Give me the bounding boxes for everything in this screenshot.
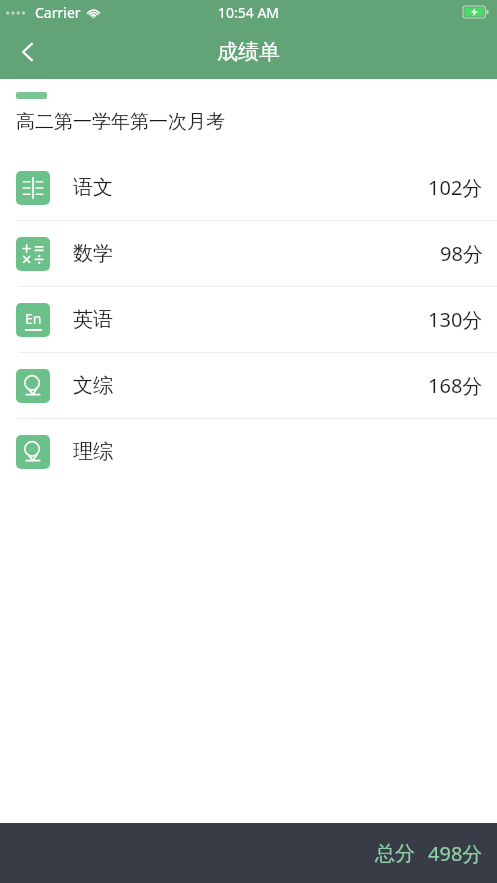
button[interactable]: 理综 xyxy=(0,419,497,484)
staticText: 168分 xyxy=(428,372,483,399)
staticText: 498分 xyxy=(428,840,483,867)
button[interactable]: 文综 xyxy=(0,353,497,419)
staticText: 130分 xyxy=(428,306,483,333)
staticText: 英语 xyxy=(73,307,113,332)
button[interactable]: 语文 xyxy=(0,155,497,221)
button[interactable]: En xyxy=(0,287,497,353)
staticText: 成绩单 xyxy=(217,39,280,65)
button[interactable]: Back xyxy=(0,24,56,79)
staticText: 98分 xyxy=(440,240,483,267)
staticText: En xyxy=(25,309,42,328)
staticText: 数学 xyxy=(73,241,113,266)
staticText: 语文 xyxy=(73,175,113,200)
staticText: 10:54 AM xyxy=(218,3,280,22)
staticText: 文综 xyxy=(73,373,113,398)
staticText: 理综 xyxy=(73,439,113,464)
staticText: 高二第一学年第一次月考 xyxy=(16,110,225,134)
button[interactable]: 数学 xyxy=(0,221,497,287)
staticText: 102分 xyxy=(428,174,483,201)
staticText: 总分 xyxy=(375,841,415,866)
staticText: Carrier xyxy=(35,3,81,22)
